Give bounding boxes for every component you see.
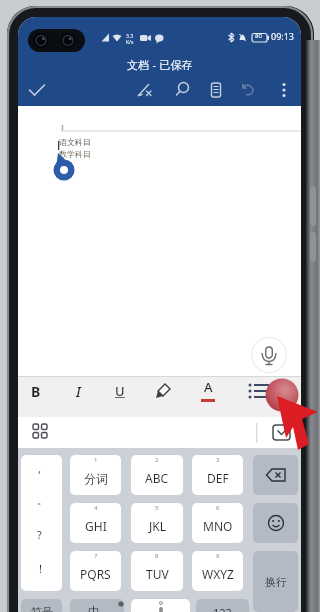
button[interactable]: 6 [192,503,243,543]
staticText: K/s [126,39,134,46]
button[interactable] [205,79,227,101]
button[interactable] [172,79,194,101]
button[interactable] [131,599,190,612]
staticText: PQRS [80,566,111,582]
staticText: 123 [213,605,232,612]
button[interactable] [151,375,177,407]
button[interactable]: 符号 [21,599,62,612]
staticText: 09:13 [271,30,295,42]
staticText: GHI [85,518,107,534]
button[interactable] [253,503,298,543]
staticText: B [31,382,41,401]
staticText: 换行 [265,575,287,589]
staticText: 7 [94,552,98,560]
button[interactable]: 7 [70,551,121,591]
button[interactable] [26,79,50,101]
staticText: 符号 [31,605,53,612]
button[interactable]: U [108,375,132,407]
button[interactable] [253,455,298,495]
staticText: 6 [216,504,220,512]
staticText: 3.3 [126,33,134,40]
staticText: DEF [207,470,229,486]
button[interactable]: 换行 [253,551,298,612]
staticText: 80 [255,32,262,40]
button[interactable]: B [24,375,48,407]
button[interactable]: A [196,375,220,407]
staticText: 2 [155,456,159,464]
staticText: 8 [155,552,159,560]
staticText: 语文科目 [59,137,91,147]
button[interactable]: 3 [192,455,243,495]
button[interactable]: I [66,375,90,407]
staticText: 数学科目 [59,149,91,159]
button[interactable]: 9 [192,551,243,591]
button[interactable]: 2 [131,455,183,495]
staticText: 3 [216,456,220,464]
button[interactable] [273,79,295,101]
button[interactable]: 8 [131,551,183,591]
staticText: 1 [94,456,98,464]
button[interactable]: 4 [70,503,121,543]
button[interactable] [236,79,258,101]
staticText: I [76,382,81,401]
staticText: ? [37,527,42,542]
button[interactable] [26,419,54,446]
staticText: TUV [146,566,169,582]
staticText: ABC [145,470,169,486]
staticText: 5 [155,504,159,512]
staticText: 中 [88,604,100,612]
staticText: WXYZ [202,566,234,582]
staticText: A [204,378,213,396]
button[interactable] [270,422,294,444]
staticText: U [115,382,125,400]
button[interactable] [21,455,62,591]
staticText: 分词 [84,471,108,486]
staticText: , [38,461,41,476]
staticText: 9 [216,552,220,560]
staticText: 。 [37,494,47,507]
button[interactable] [243,375,271,407]
button[interactable] [251,337,287,373]
button[interactable]: 123 [196,599,249,612]
button[interactable]: 1 [70,455,121,495]
staticText: 文档 - 已保存 [127,57,193,72]
staticText: 4 [94,504,98,512]
button[interactable] [134,79,156,101]
staticText: MNO [203,518,233,534]
button[interactable]: 5 [131,503,183,543]
button[interactable]: 中 [70,599,124,612]
staticText: JKL [149,518,166,534]
staticText: ! [39,561,42,576]
